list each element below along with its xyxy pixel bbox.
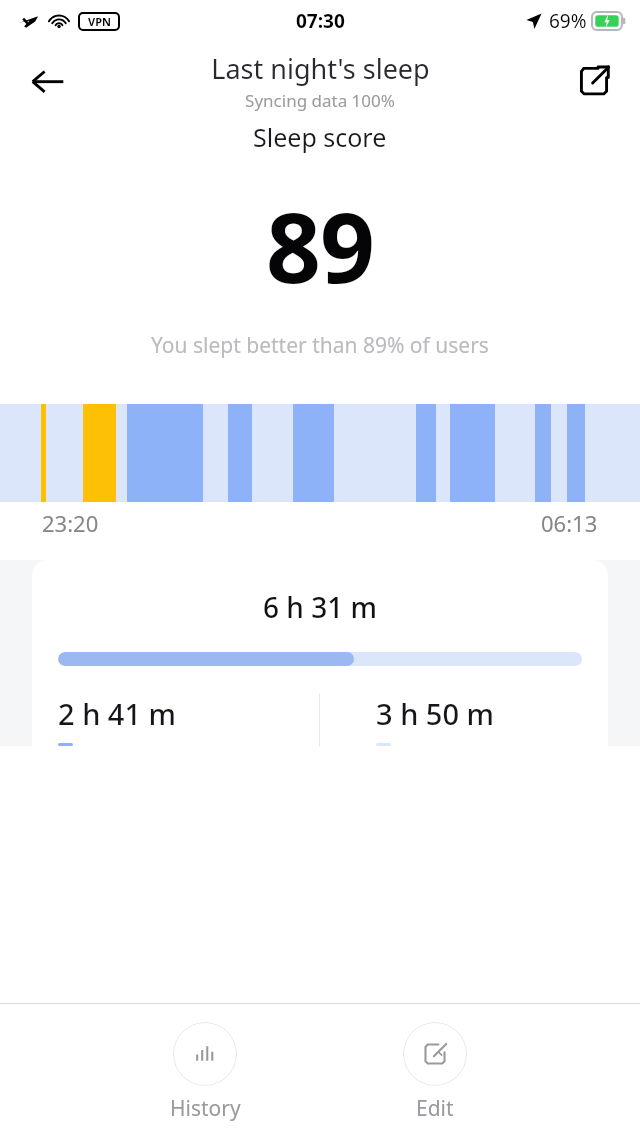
staticText: You slept better than 89% of users: [151, 331, 489, 360]
staticText: 3 h 50 m: [376, 694, 495, 733]
staticText: 6 h 31 m: [32, 588, 608, 626]
button[interactable]: Edit: [359, 1004, 511, 1123]
other: History: [191, 1040, 219, 1068]
button[interactable]: 6 h 31 m: [32, 560, 608, 746]
staticText: Sleep score: [253, 120, 387, 154]
staticText: Last night's sleep: [211, 50, 430, 87]
staticText: 2 h 41 m: [58, 694, 177, 733]
other: Edit: [421, 1040, 449, 1068]
button[interactable]: Back: [24, 57, 72, 105]
staticText: 23:20: [42, 508, 99, 538]
staticText: 06:13: [541, 508, 598, 538]
staticText: 69%: [549, 8, 587, 34]
staticText: VPN: [88, 14, 111, 29]
staticText: Syncing data 100%: [245, 89, 395, 112]
staticText: 07:30: [296, 8, 345, 34]
staticText: Edit: [416, 1094, 454, 1123]
staticText: 89: [266, 180, 374, 311]
staticText: History: [170, 1094, 241, 1123]
button[interactable]: Share: [570, 57, 618, 105]
button[interactable]: History: [129, 1004, 281, 1123]
